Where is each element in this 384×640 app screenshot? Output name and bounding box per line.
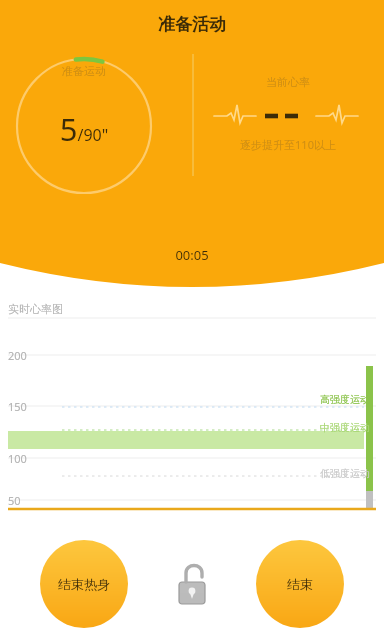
button[interactable]: Unlock screen	[174, 566, 210, 602]
staticText: 中强度运动	[260, 421, 370, 437]
staticText: 50	[8, 493, 21, 508]
staticText: 准备运动	[0, 64, 174, 86]
staticText: 100	[8, 451, 27, 466]
staticText: 逐步提升至110以上	[198, 137, 378, 159]
staticText: 结束	[287, 576, 313, 592]
staticText: 00:05	[102, 246, 282, 268]
button[interactable]: 结束	[256, 540, 344, 628]
button[interactable]: 结束热身	[40, 540, 128, 628]
staticText: 200	[8, 348, 27, 363]
staticText: 150	[8, 399, 27, 414]
staticText: 实时心率图	[8, 302, 63, 316]
staticText: 低强度运动	[260, 467, 370, 483]
staticText: 准备活动	[102, 14, 282, 36]
staticText: 5/90"	[24, 108, 144, 152]
staticText: 结束热身	[58, 576, 110, 592]
staticText: 当前心率	[198, 75, 378, 97]
staticText: 高强度运动	[260, 393, 370, 409]
